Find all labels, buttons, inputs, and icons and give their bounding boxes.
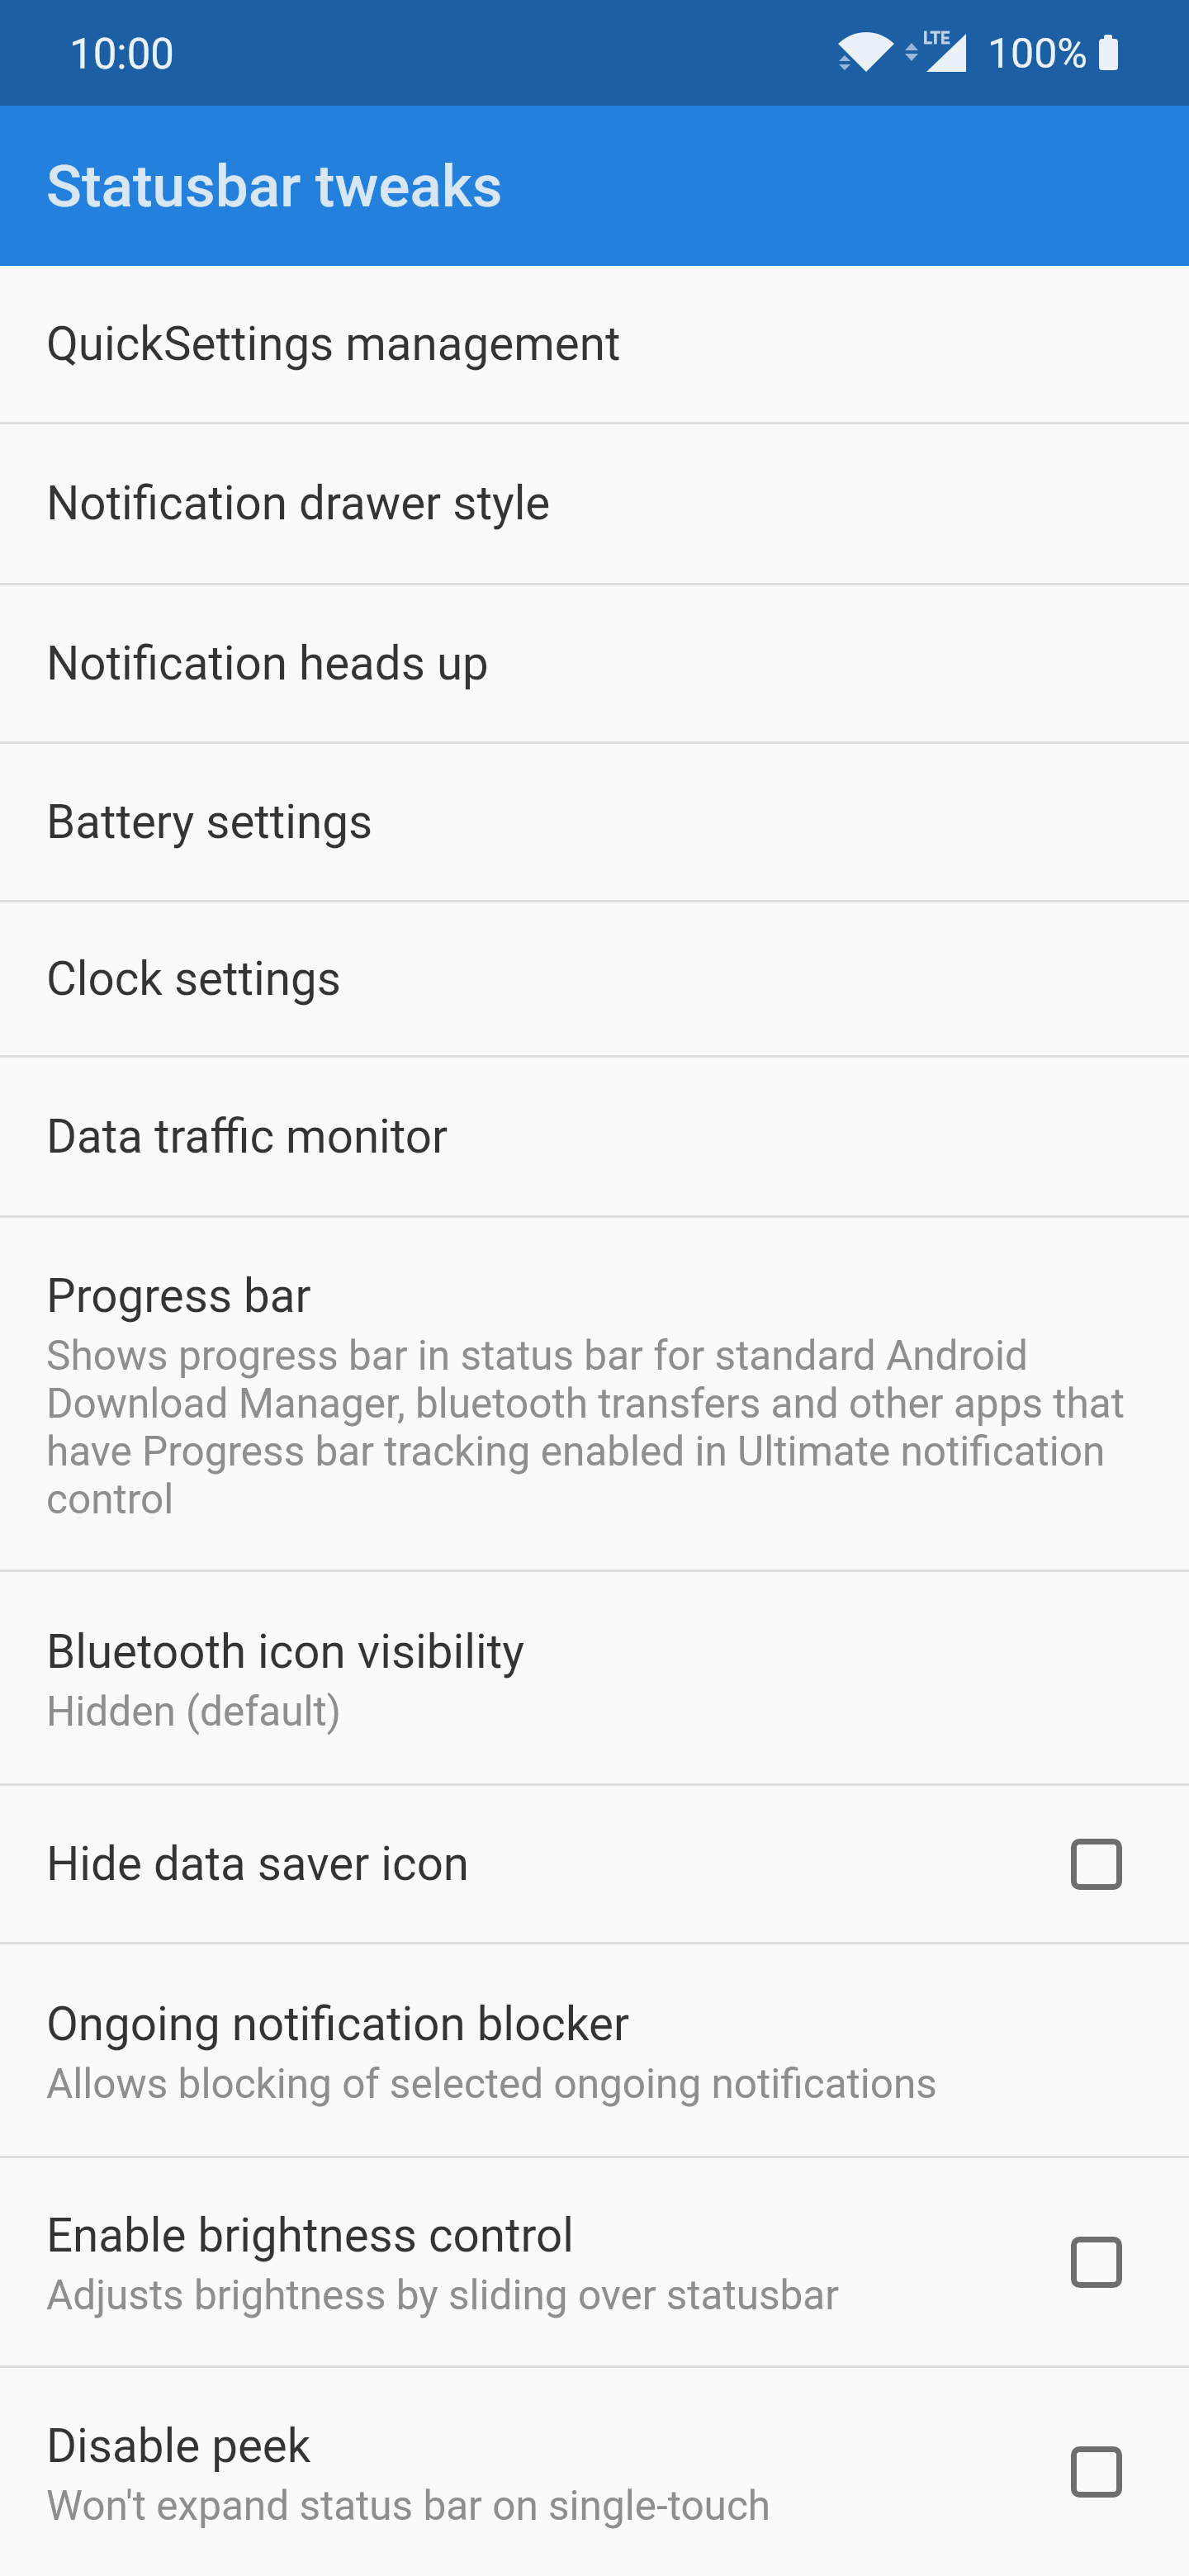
staticText: Bluetooth icon visibility [46, 1625, 524, 1679]
staticText: Notification heads up [46, 637, 489, 691]
button[interactable]: QuickSettings management [0, 266, 1189, 422]
button[interactable]: Bluetooth icon visibility [0, 1572, 1189, 1783]
button[interactable]: Ongoing notification blocker [0, 1944, 1189, 2156]
staticText: Won't expand status bar on single-touch [46, 2482, 771, 2530]
button[interactable]: Battery settings [0, 744, 1189, 900]
staticText: Hide data saver icon [46, 1837, 470, 1892]
staticText: Notification drawer style [46, 476, 551, 531]
button[interactable]: Notification heads up [0, 585, 1189, 741]
staticText: LTE [923, 28, 950, 47]
staticText: Statusbar tweaks [46, 152, 503, 220]
button[interactable]: Hide data saver icon [0, 1786, 1189, 1942]
staticText: 10:00 [69, 30, 175, 79]
staticText: 100% [988, 30, 1087, 78]
staticText: Clock settings [46, 952, 341, 1006]
staticText: Allows blocking of selected ongoing noti… [46, 2060, 937, 2108]
staticText: Battery settings [46, 795, 373, 850]
button[interactable]: Enable brightness control [0, 2158, 1189, 2365]
staticText: Progress bar [46, 1269, 311, 1324]
staticText: Data traffic monitor [46, 1110, 448, 1164]
staticText: Hidden (default) [46, 1688, 342, 1735]
staticText: Ongoing notification blocker [46, 1997, 630, 2052]
staticText: Disable peek [46, 2419, 311, 2474]
button[interactable]: Notification drawer style [0, 424, 1189, 583]
staticText: Enable brightness control [46, 2209, 574, 2263]
button[interactable]: Data traffic monitor [0, 1058, 1189, 1215]
button[interactable]: Clock settings [0, 902, 1189, 1055]
staticText: Adjusts brightness by sliding over statu… [46, 2271, 839, 2319]
button[interactable]: Disable peek [0, 2368, 1189, 2576]
button[interactable]: Progress bar [0, 1218, 1189, 1570]
staticText: Shows progress bar in status bar for sta… [46, 1332, 1125, 1523]
staticText: QuickSettings management [46, 317, 621, 372]
